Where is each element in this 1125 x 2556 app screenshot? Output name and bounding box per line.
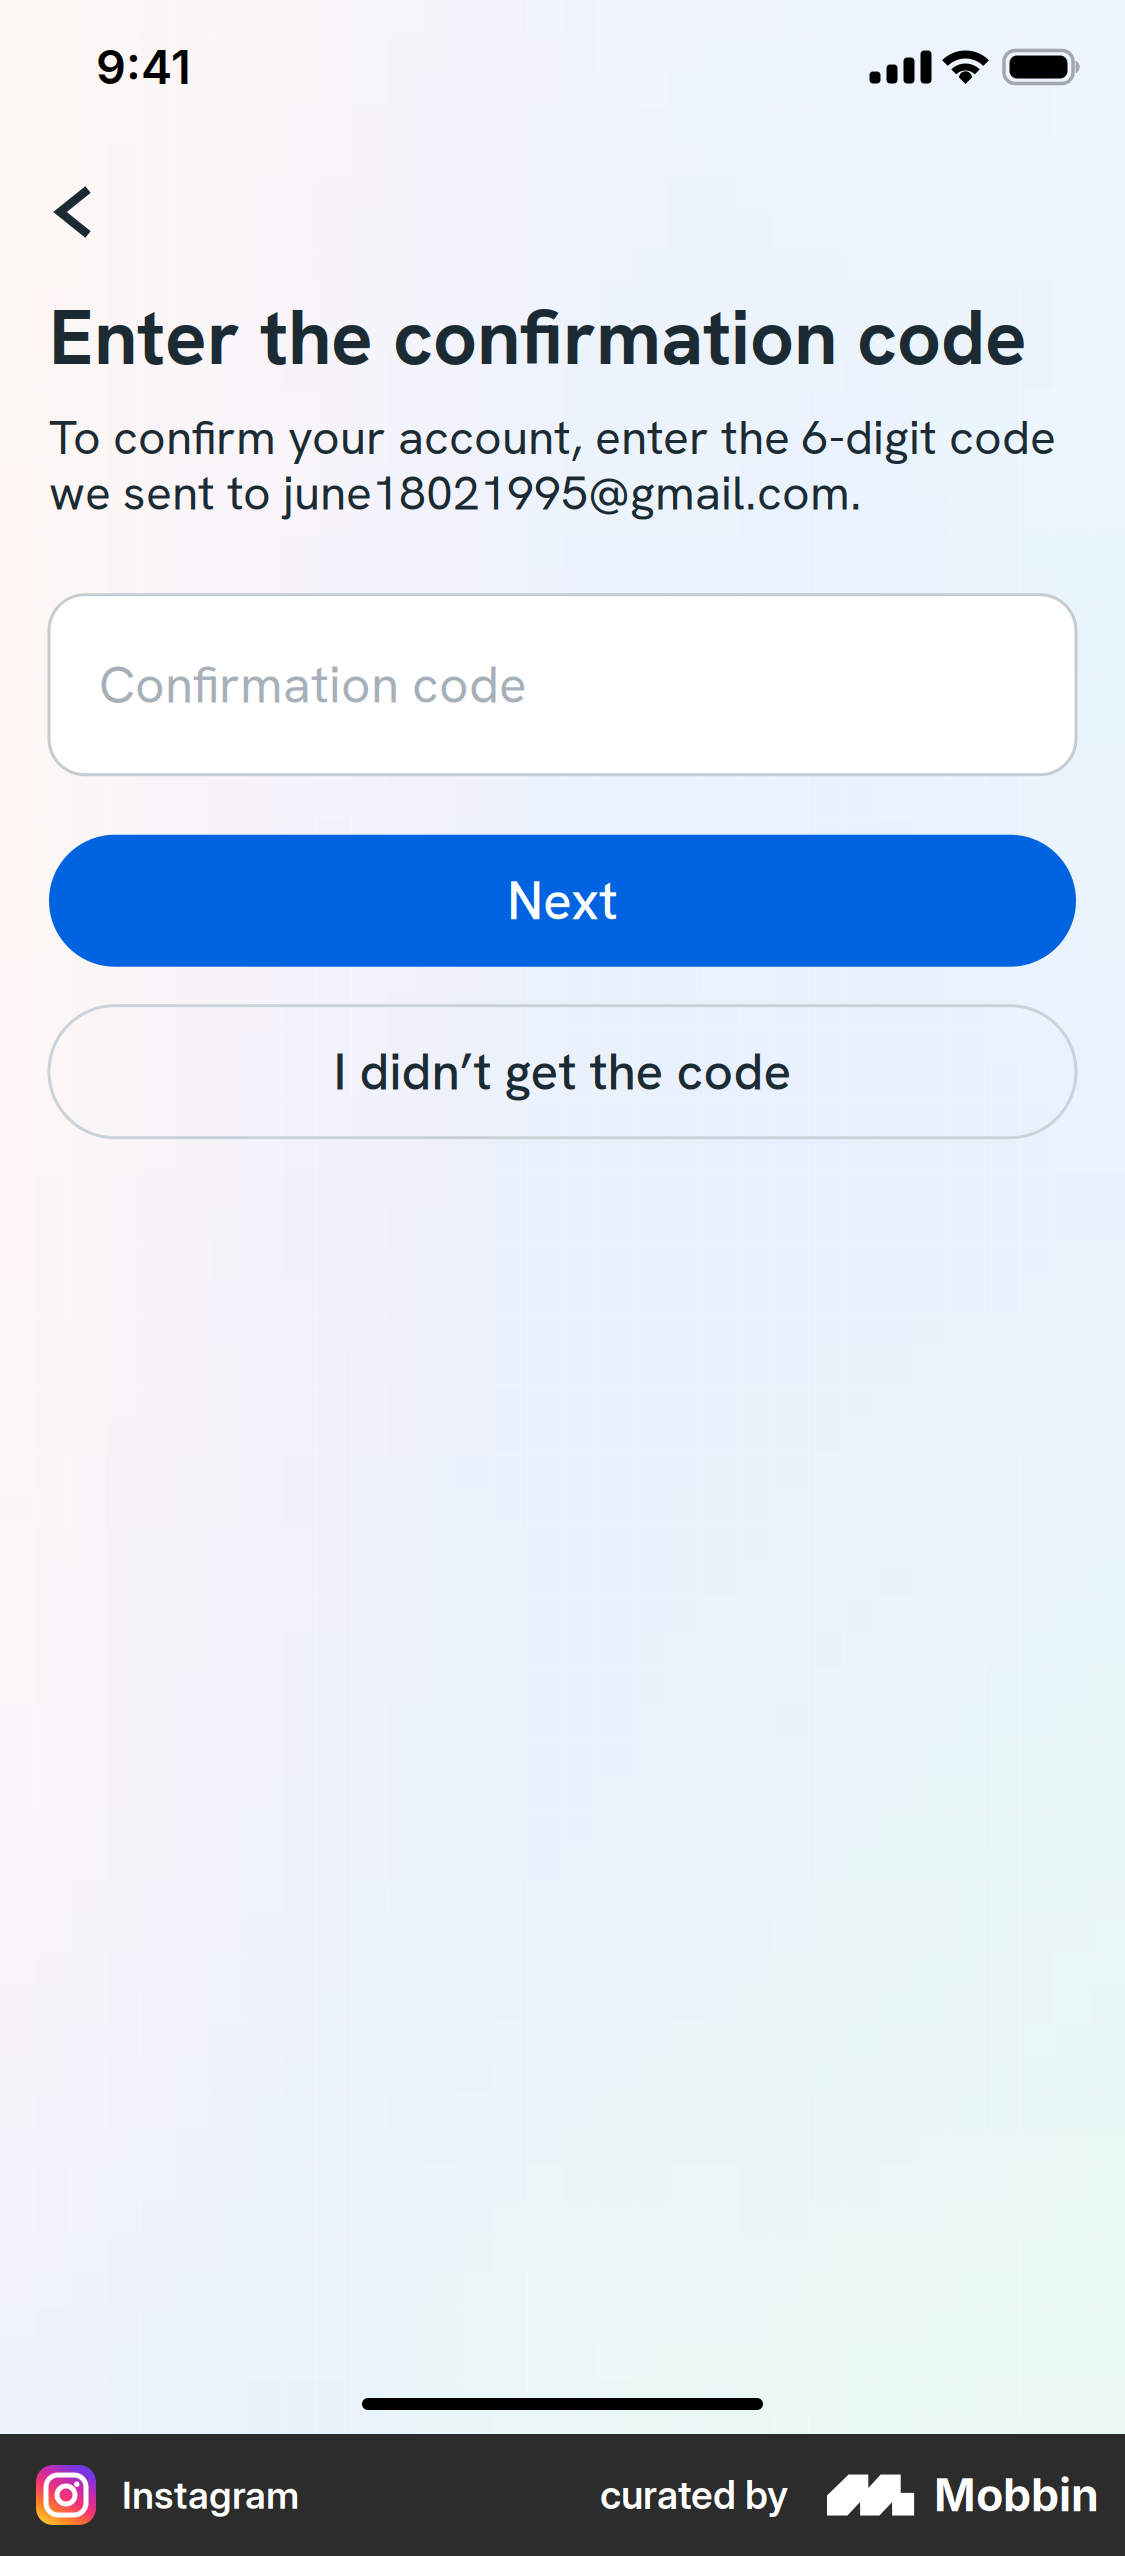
staticText: Confirmation code: [99, 651, 527, 718]
staticText: Instagram: [122, 2472, 299, 2518]
staticText: Enter the confirmation code: [49, 291, 1027, 383]
button[interactable]: I didn’t get the code: [49, 1006, 1076, 1138]
staticText: Mobbin: [934, 2468, 1099, 2522]
staticText: Next: [507, 866, 618, 935]
staticText: 9:41: [96, 39, 191, 95]
button[interactable]: Confirmation code: [49, 595, 1076, 775]
staticText: To confirm your account, enter the 6-dig…: [49, 409, 1056, 521]
staticText: curated by: [600, 2472, 788, 2518]
button[interactable]: Back: [0, 166, 220, 258]
button[interactable]: Next: [49, 835, 1076, 967]
staticText: I didn’t get the code: [333, 1038, 791, 1105]
